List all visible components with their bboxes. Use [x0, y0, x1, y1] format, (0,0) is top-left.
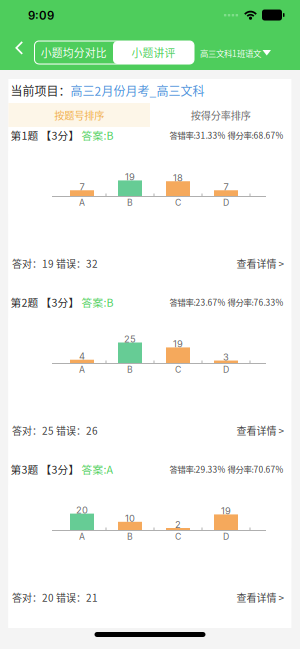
staticText: 答错率:31.33% 得分率:68.67%: [169, 129, 283, 141]
staticText: 小题均分对比: [41, 45, 107, 60]
staticText: 高三2月份月考_高三文科: [70, 82, 204, 99]
staticText: 4: [79, 351, 85, 362]
staticText: 3: [223, 351, 229, 363]
staticText: B: [127, 531, 133, 542]
staticText: A: [79, 197, 85, 208]
staticText: 小题讲评: [131, 45, 175, 60]
staticText: 第3题 【3分】: [10, 461, 79, 477]
button[interactable]: Back: [3, 32, 35, 64]
staticText: 19: [221, 505, 231, 517]
staticText: 19: [125, 171, 135, 183]
staticText: C: [175, 364, 181, 375]
staticText: 答错率:29.33% 得分率:70.67%: [169, 463, 283, 475]
staticText: 按得分率排序: [191, 108, 251, 122]
staticText: 答对：20 错误：21: [12, 590, 98, 605]
staticText: 第1题 【3分】: [10, 127, 79, 143]
staticText: 10: [125, 513, 135, 524]
staticText: 19: [173, 338, 183, 350]
staticText: 查看详情 >: [236, 590, 284, 605]
staticText: 7: [79, 181, 84, 192]
staticText: 9:09: [28, 9, 54, 22]
staticText: D: [223, 531, 229, 542]
button[interactable]: 查看详情 >: [214, 592, 284, 603]
staticText: C: [175, 531, 181, 542]
staticText: 按题号排序: [54, 108, 104, 122]
staticText: 第2题 【3分】: [10, 294, 79, 310]
staticText: 答案:B: [79, 127, 113, 143]
button[interactable]: 高三2月份月考_高三文科: [70, 82, 204, 99]
staticText: 2: [175, 519, 181, 530]
staticText: 答对：25 错误：26: [12, 423, 98, 438]
staticText: 25: [124, 333, 136, 345]
button[interactable]: 按题号排序: [8, 103, 150, 127]
staticText: 答对：19 错误：32: [12, 256, 98, 271]
staticText: 查看详情 >: [236, 423, 284, 438]
button[interactable]: 查看详情 >: [214, 258, 284, 269]
staticText: B: [127, 197, 133, 208]
button[interactable]: 查看详情 >: [214, 425, 284, 436]
button[interactable]: 小题讲评: [113, 41, 194, 64]
button[interactable]: 按得分率排序: [150, 103, 291, 127]
staticText: A: [79, 531, 85, 542]
staticText: 高三文科1班语文: [200, 47, 261, 59]
staticText: D: [223, 197, 229, 208]
staticText: 7: [223, 181, 228, 192]
button[interactable]: 小题均分对比: [34, 41, 113, 64]
staticText: 答案:B: [79, 294, 113, 310]
staticText: A: [79, 364, 85, 375]
staticText: 18: [173, 172, 183, 183]
staticText: C: [175, 197, 181, 208]
staticText: D: [223, 364, 229, 375]
staticText: 答案:A: [79, 461, 112, 477]
staticText: 当前项目：: [10, 82, 70, 99]
staticText: 20: [76, 504, 88, 516]
button[interactable]: 高三文科1班语文: [200, 41, 271, 65]
staticText: 查看详情 >: [236, 256, 284, 271]
staticText: 答错率:23.67% 得分率:76.33%: [169, 296, 283, 308]
staticText: B: [127, 364, 133, 375]
